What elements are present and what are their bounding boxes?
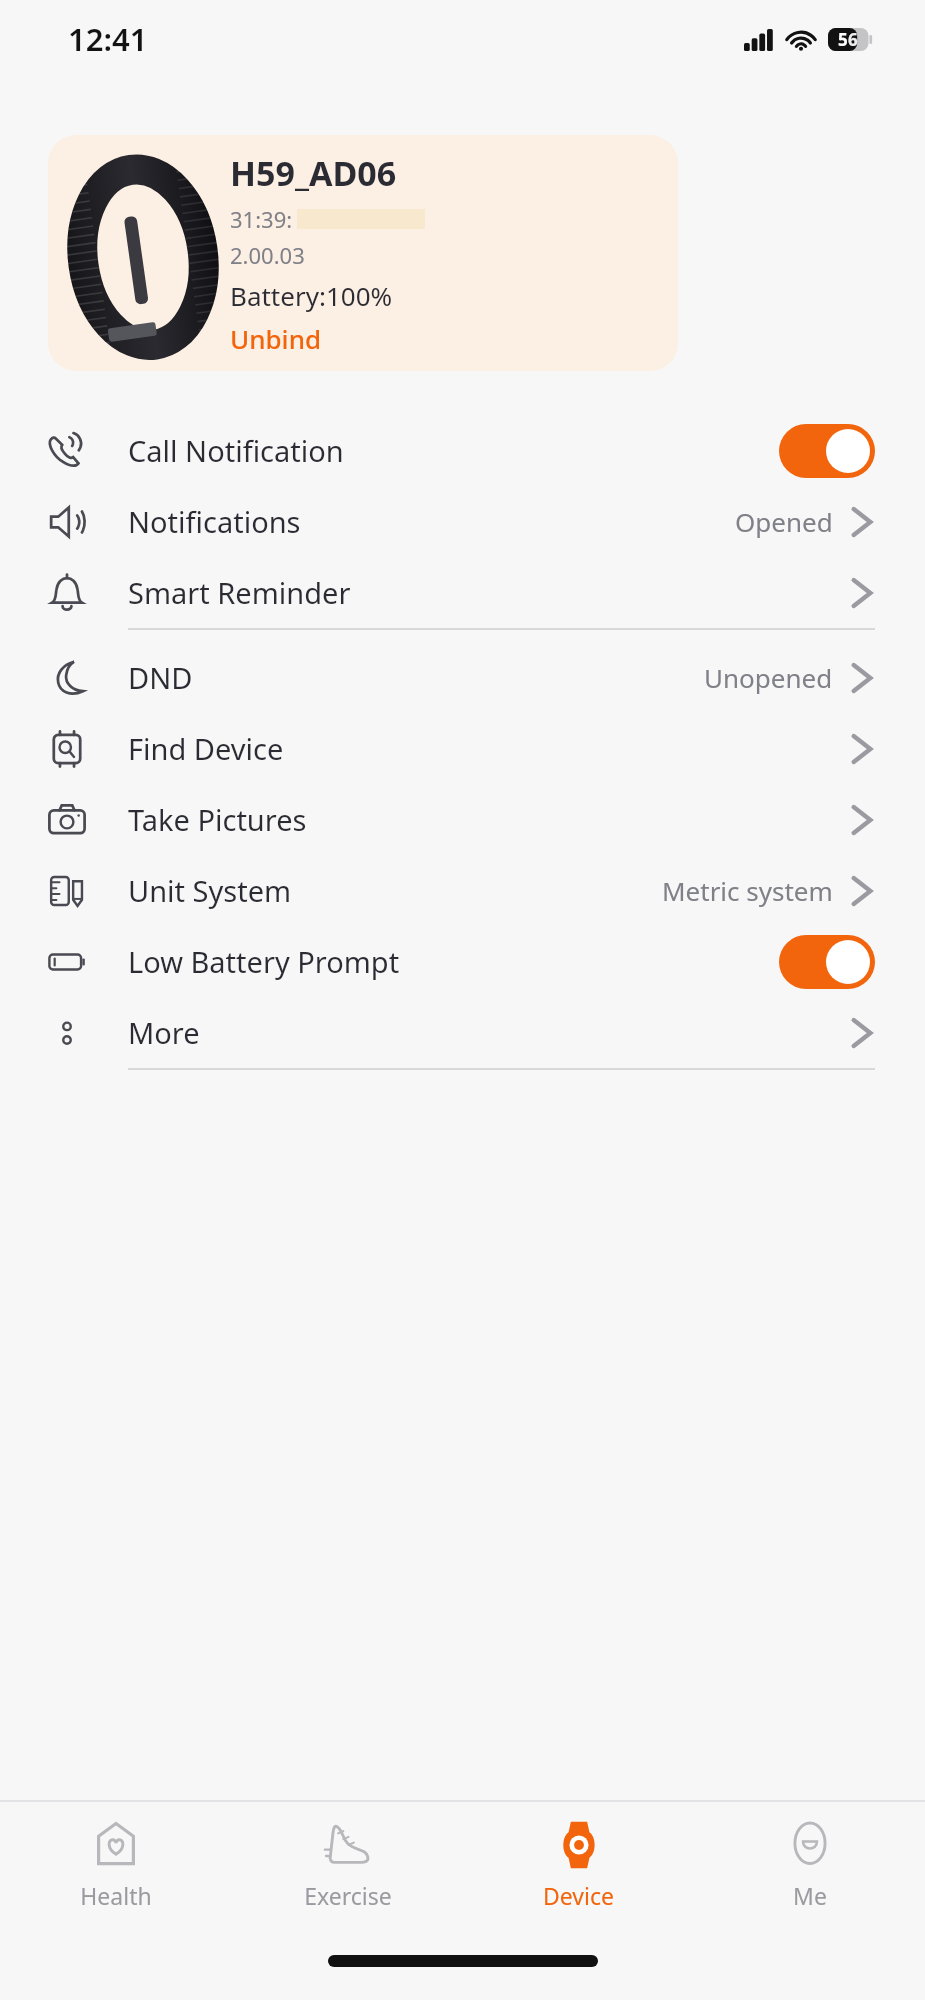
staticText: 12:41 bbox=[68, 18, 148, 60]
staticText: Health bbox=[80, 1880, 152, 1911]
staticText: DND bbox=[128, 658, 193, 697]
staticText: 31:39: bbox=[230, 204, 293, 234]
staticText: Metric system bbox=[662, 873, 833, 908]
staticText: Battery:100% bbox=[230, 278, 393, 313]
button[interactable]: Toggle Low Battery Prompt bbox=[779, 935, 875, 989]
staticText: 2.00.03 bbox=[230, 240, 305, 270]
staticText: More bbox=[128, 1013, 200, 1052]
staticText: H59_AD06 bbox=[230, 150, 397, 196]
staticText: Unbind bbox=[230, 321, 322, 356]
staticText: Unit System bbox=[128, 871, 292, 910]
button[interactable]: Unit System bbox=[0, 855, 925, 926]
staticText: Smart Reminder bbox=[128, 573, 351, 612]
button[interactable]: Smart Reminder bbox=[0, 557, 925, 628]
staticText: Opened bbox=[735, 504, 833, 539]
button[interactable]: DND bbox=[0, 642, 925, 713]
button[interactable]: Exercise bbox=[232, 1802, 463, 1934]
staticText: Find Device bbox=[128, 729, 284, 768]
button[interactable]: Notifications bbox=[0, 486, 925, 557]
button[interactable]: Me bbox=[694, 1802, 925, 1934]
button[interactable]: Take Pictures bbox=[0, 784, 925, 855]
button[interactable]: Low Battery Prompt bbox=[0, 926, 925, 997]
button[interactable]: Call Notification bbox=[0, 415, 925, 486]
staticText: 5 bbox=[838, 28, 848, 51]
staticText: Notifications bbox=[128, 502, 301, 541]
staticText: Take Pictures bbox=[128, 800, 307, 839]
button[interactable]: Unbind bbox=[230, 321, 322, 356]
button[interactable]: H59_AD06 bbox=[48, 135, 678, 371]
button[interactable]: Toggle Call Notification bbox=[779, 424, 875, 478]
staticText: Me bbox=[793, 1880, 827, 1911]
staticText: Unopened bbox=[704, 660, 833, 695]
staticText: Call Notification bbox=[128, 431, 344, 470]
button[interactable]: More bbox=[0, 997, 925, 1068]
button[interactable]: Find Device bbox=[0, 713, 925, 784]
staticText: Exercise bbox=[304, 1880, 392, 1911]
staticText: 6 bbox=[848, 28, 858, 51]
button[interactable]: Health bbox=[0, 1802, 232, 1934]
staticText: Device bbox=[543, 1880, 614, 1911]
button[interactable]: Device bbox=[463, 1802, 694, 1934]
staticText: Low Battery Prompt bbox=[128, 942, 400, 981]
